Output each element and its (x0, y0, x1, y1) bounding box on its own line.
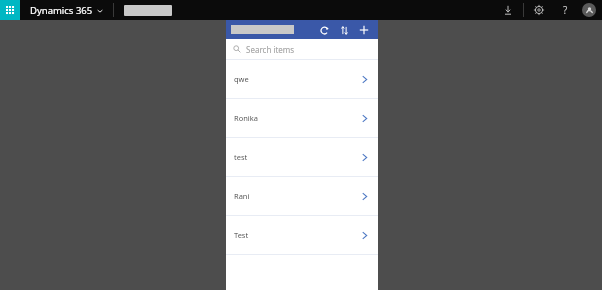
button[interactable]: Search items (226, 39, 378, 59)
button[interactable]: New (357, 23, 371, 37)
button[interactable]: Search (124, 5, 172, 16)
button[interactable]: Help (556, 1, 574, 19)
button[interactable]: Rani (226, 177, 378, 215)
button[interactable]: Sort (337, 23, 351, 37)
button[interactable]: Settings (530, 1, 548, 19)
button[interactable]: Account (582, 3, 596, 17)
staticText: Search items (246, 44, 295, 55)
staticText: Dynamics 365 (30, 4, 93, 17)
staticText: Ronika (234, 113, 258, 123)
button[interactable]: qwe (226, 60, 378, 98)
button[interactable]: Download (499, 1, 517, 19)
button[interactable]: Ronika (226, 99, 378, 137)
staticText: ? (563, 3, 568, 17)
button[interactable]: Dynamics 365 (30, 4, 103, 17)
staticText: Rani (234, 191, 250, 201)
button[interactable]: test (226, 138, 378, 176)
staticText: test (234, 152, 248, 162)
button[interactable]: App launcher (0, 0, 20, 20)
staticText: qwe (234, 74, 249, 84)
staticText: Test (234, 230, 249, 240)
button[interactable]: Refresh (317, 23, 331, 37)
button[interactable]: Test (226, 216, 378, 254)
